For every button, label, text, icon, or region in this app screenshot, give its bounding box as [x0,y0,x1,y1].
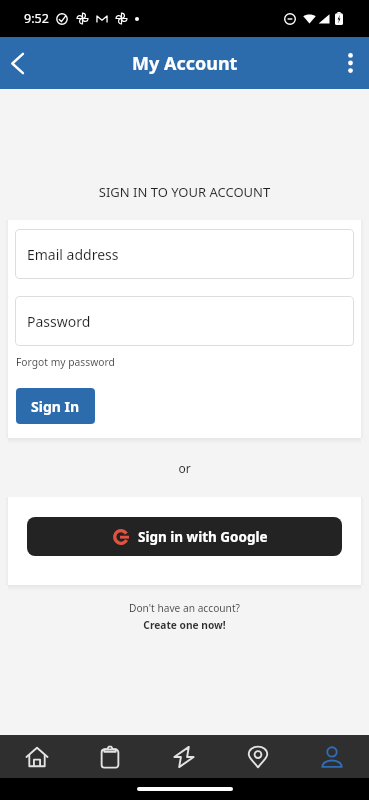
button[interactable]: Sign in with Google [27,517,342,556]
staticText: Password [27,312,91,331]
staticText: Sign in with Google [138,528,268,546]
staticText: My Account [132,51,238,76]
button[interactable]: Home [0,735,73,778]
button[interactable]: Account [295,735,369,778]
staticText: SIGN IN TO YOUR ACCOUNT [0,183,369,201]
button[interactable]: Password [15,296,354,346]
staticText: Email address [27,245,119,264]
button[interactable]: Create one now! [0,618,369,632]
button[interactable]: Forgot my password [15,355,116,369]
button[interactable]: Email address [15,229,354,279]
button[interactable]: More options [332,37,369,89]
button[interactable]: Sign In [16,388,95,424]
button[interactable]: Back [0,37,35,89]
staticText: Don't have an account? [0,601,369,615]
staticText: Sign In [31,397,80,416]
staticText: or [0,460,369,476]
button[interactable]: Orders [73,735,147,778]
staticText: 9:52 [24,10,49,27]
button[interactable]: Locations [221,735,295,778]
button[interactable]: Charge [147,735,221,778]
